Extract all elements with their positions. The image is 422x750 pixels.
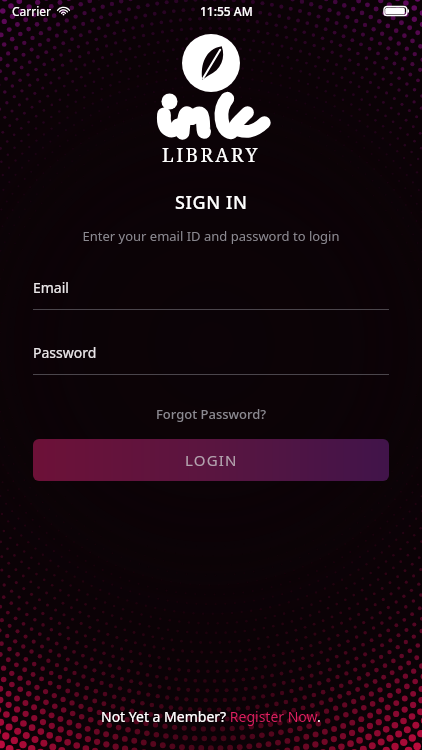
- staticText: Email: [33, 278, 69, 297]
- staticText: Enter your email ID and password to logi…: [82, 227, 340, 245]
- button[interactable]: Forgot Password?: [148, 401, 275, 427]
- button[interactable]: LOGIN: [33, 439, 389, 481]
- staticText: SIGN IN: [175, 190, 248, 215]
- staticText: Forgot Password?: [156, 405, 267, 423]
- staticText: Carrier: [12, 3, 52, 19]
- staticText: LIBRARY: [162, 142, 260, 168]
- button[interactable]: Email: [33, 278, 389, 310]
- button[interactable]: Not Yet a Member? Register Now.: [93, 701, 329, 732]
- staticText: 11:55 AM: [200, 3, 253, 19]
- staticText: Not Yet a Member? Register Now.: [101, 707, 321, 726]
- button[interactable]: Password: [33, 343, 389, 375]
- staticText: LOGIN: [185, 450, 238, 470]
- staticText: Password: [33, 343, 97, 362]
